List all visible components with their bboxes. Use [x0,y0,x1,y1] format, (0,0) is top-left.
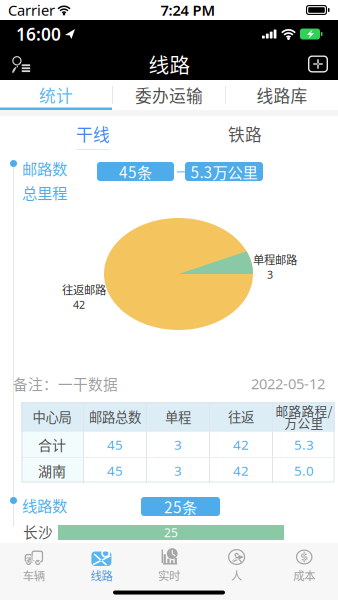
staticText: Carrier [8,0,55,20]
staticText: 3 [174,462,182,479]
staticText: 长沙 [23,521,53,542]
staticText: 往返 [228,407,254,426]
staticText: 湖南 [38,460,66,481]
staticText: 线路数 [22,494,67,516]
staticText: 42 [233,462,249,479]
staticText: 实时 [158,567,180,583]
button[interactable]: 成本 [270,543,338,585]
button[interactable]: 人 [203,543,270,585]
staticText: 铁路 [228,122,262,146]
staticText: 45 [107,462,123,479]
button[interactable]: 委办运输 [113,80,225,110]
staticText: 成本 [293,567,315,583]
staticText: 42 [73,297,85,312]
staticText: 42 [233,436,249,453]
staticText: 人 [231,567,242,583]
staticText: 25 [164,524,178,540]
button[interactable]: 实时 [135,543,203,585]
button[interactable]: 线路库 [226,80,338,110]
staticText: 邮路数 [22,157,67,179]
staticText: 备注：一干数据 [13,373,118,394]
staticText: 合计 [38,434,66,455]
staticText: 干线 [76,122,110,146]
staticText: 45 [107,436,123,453]
button[interactable]: 车辆 [0,543,68,585]
staticText: 往返邮路 [62,281,106,297]
button[interactable]: 统计 [0,80,112,110]
staticText: 3 [267,267,273,282]
staticText: 线路 [148,49,190,79]
staticText: 单程 [165,407,191,426]
staticText: 委办运输 [135,83,203,107]
staticText: 45条 [119,160,152,183]
staticText: 车辆 [23,567,45,583]
staticText: 邮路路程/ [275,401,332,420]
staticText: 5.3 [294,436,314,453]
staticText: 7:24 PM [160,0,215,20]
staticText: 中心局 [32,407,71,426]
staticText: 万公里 [284,413,323,432]
staticText: 邮路总数 [89,407,141,426]
staticText: 2022-05-12 [251,374,325,393]
button[interactable]: Contacts [0,48,39,79]
staticText: 统计 [39,83,73,107]
staticText: 16:00 [16,22,61,45]
staticText: 单程邮路 [253,251,297,267]
staticText: 线路库 [256,83,307,107]
button[interactable]: 线路 [68,543,135,585]
button[interactable]: 铁路 [214,116,276,150]
staticText: 25条 [164,495,197,518]
button[interactable]: Add [300,48,338,79]
staticText: 5.3万公里 [190,160,257,183]
staticText: 线路 [90,567,112,583]
staticText: 总里程 [22,181,67,203]
staticText: 5.0 [294,462,314,479]
button[interactable]: 干线 [62,116,124,150]
staticText: 3 [174,436,182,453]
